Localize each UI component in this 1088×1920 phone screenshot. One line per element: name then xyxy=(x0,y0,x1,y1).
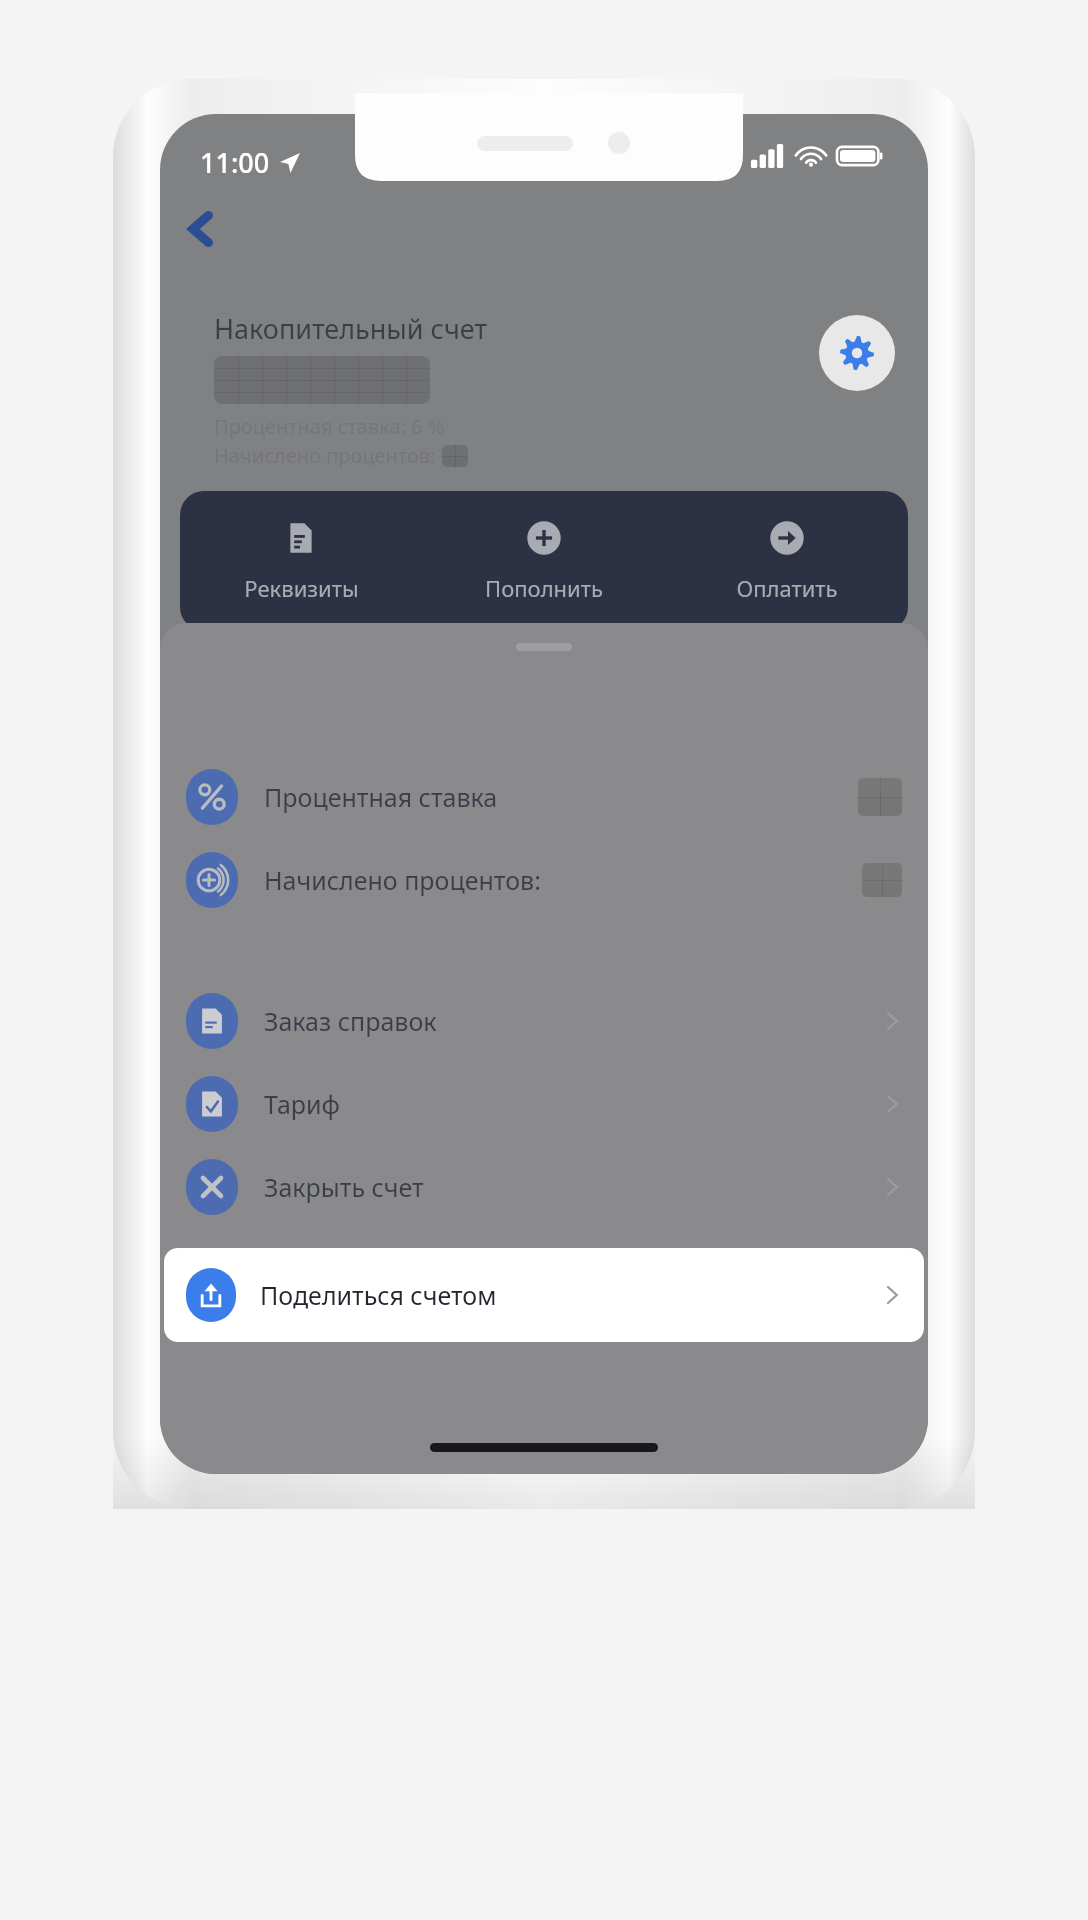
button[interactable]: Закрыть счет xyxy=(160,1145,928,1229)
staticText: Реквизиты xyxy=(244,573,359,603)
button[interactable]: Реквизиты xyxy=(180,491,422,631)
button[interactable]: Пополнить xyxy=(422,491,665,631)
staticText: Процентная ставка: 6 % xyxy=(214,413,445,440)
staticText: Накопительный счет xyxy=(214,310,487,347)
staticText: Тариф xyxy=(264,1087,340,1121)
staticText: Закрыть счет xyxy=(264,1170,424,1204)
button[interactable]: Настройки xyxy=(819,315,895,391)
staticText: Заказ справок xyxy=(264,1004,437,1038)
button[interactable]: Оплатить xyxy=(665,491,908,631)
button[interactable]: Поделиться счетом xyxy=(164,1248,924,1342)
button[interactable]: Тариф xyxy=(160,1062,928,1146)
staticText: Поделиться счетом xyxy=(260,1278,497,1312)
staticText: Начислено процентов: xyxy=(214,442,436,469)
staticText: Процентная ставка xyxy=(264,780,498,814)
staticText: Оплатить xyxy=(736,573,838,603)
staticText: Пополнить xyxy=(485,573,603,603)
button[interactable]: Процентная ставка xyxy=(160,755,928,839)
button[interactable]: Начислено процентов: xyxy=(160,838,928,922)
staticText: Начислено процентов: xyxy=(264,863,541,897)
staticText: 11:00 xyxy=(200,144,270,181)
button[interactable]: Назад xyxy=(164,192,238,266)
button[interactable]: Заказ справок xyxy=(160,979,928,1063)
